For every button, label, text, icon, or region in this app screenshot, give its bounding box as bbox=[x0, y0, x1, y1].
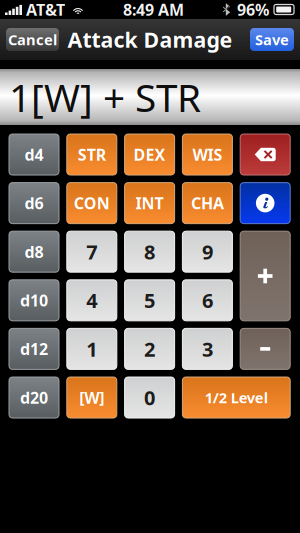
button[interactable]: d4 bbox=[9, 134, 59, 175]
button[interactable]: 6 bbox=[182, 280, 232, 321]
staticText: CHA bbox=[191, 192, 224, 214]
button[interactable]: 9 bbox=[182, 231, 232, 272]
staticText: WIS bbox=[192, 144, 222, 165]
staticText: INT bbox=[136, 192, 164, 214]
staticText: 3 bbox=[202, 336, 213, 362]
button[interactable]: WIS bbox=[182, 134, 232, 175]
staticText: AT&T bbox=[26, 0, 65, 20]
staticText: d10 bbox=[20, 290, 48, 311]
staticText: 0 bbox=[144, 384, 155, 411]
button[interactable]: d12 bbox=[9, 328, 59, 369]
button[interactable]: d6 bbox=[9, 183, 59, 224]
button[interactable]: d10 bbox=[9, 280, 59, 321]
staticText: [W] bbox=[79, 387, 104, 408]
button[interactable]: Cancel bbox=[6, 28, 59, 51]
button[interactable]: Delete bbox=[240, 134, 290, 175]
staticText: 9 bbox=[202, 238, 213, 265]
button[interactable]: Plus bbox=[240, 231, 290, 321]
staticText: STR bbox=[78, 144, 106, 165]
staticText: Attack Damage bbox=[67, 25, 232, 54]
staticText: 5 bbox=[144, 287, 155, 314]
staticText: Save bbox=[255, 30, 289, 49]
staticText: 7 bbox=[86, 238, 97, 265]
staticText: 1 bbox=[86, 336, 97, 362]
staticText: Cancel bbox=[8, 30, 57, 49]
staticText: CON bbox=[74, 192, 110, 214]
button[interactable]: CHA bbox=[182, 183, 232, 224]
staticText: 2 bbox=[144, 336, 155, 362]
button[interactable]: STR bbox=[67, 134, 117, 175]
staticText: d12 bbox=[20, 338, 48, 359]
staticText: d6 bbox=[24, 192, 43, 214]
staticText: d4 bbox=[24, 144, 43, 165]
staticText: DEX bbox=[134, 144, 166, 165]
button[interactable]: 1 bbox=[67, 328, 117, 369]
button[interactable]: Info bbox=[240, 183, 290, 224]
staticText: 96% bbox=[237, 0, 269, 20]
button[interactable]: 8 bbox=[125, 231, 175, 272]
staticText: 1/2 Level bbox=[205, 388, 268, 407]
button[interactable]: CON bbox=[67, 183, 117, 224]
staticText: d8 bbox=[24, 241, 43, 262]
button[interactable]: 3 bbox=[182, 328, 232, 369]
staticText: 8 bbox=[144, 238, 155, 265]
button[interactable]: DEX bbox=[125, 134, 175, 175]
button[interactable]: Save bbox=[250, 28, 294, 51]
button[interactable]: 7 bbox=[67, 231, 117, 272]
staticText: 6 bbox=[202, 287, 213, 314]
button[interactable]: [W] bbox=[67, 377, 117, 418]
staticText: 8:49 AM bbox=[123, 0, 184, 20]
button[interactable]: 0 bbox=[125, 377, 175, 418]
button[interactable]: d8 bbox=[9, 231, 59, 272]
button[interactable]: d20 bbox=[9, 377, 59, 418]
button[interactable]: 4 bbox=[67, 280, 117, 321]
button[interactable]: Minus bbox=[240, 328, 290, 369]
button[interactable]: 2 bbox=[125, 328, 175, 369]
button[interactable]: 5 bbox=[125, 280, 175, 321]
staticText: 1[W] + STR bbox=[9, 71, 201, 123]
staticText: 4 bbox=[86, 287, 97, 314]
button[interactable]: INT bbox=[125, 183, 175, 224]
staticText: d20 bbox=[20, 387, 48, 408]
button[interactable]: 1/2 Level bbox=[182, 377, 290, 418]
